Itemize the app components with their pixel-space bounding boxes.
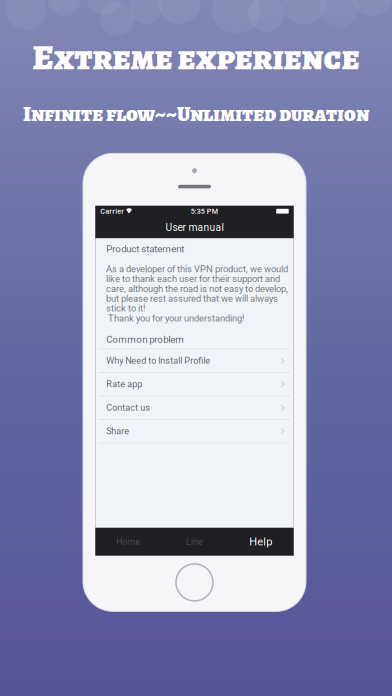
button[interactable]: Line <box>161 528 228 556</box>
staticText: Line <box>186 537 203 547</box>
button[interactable]: Home <box>95 528 161 556</box>
staticText: Rate app <box>106 379 142 389</box>
staticText: As a developer of this VPN product, we w… <box>106 264 288 324</box>
staticText: User manual <box>165 221 223 233</box>
staticText: Share <box>106 426 129 436</box>
button[interactable]: Rate app <box>95 373 294 396</box>
staticText: Why Need to Install Profile <box>106 355 210 366</box>
staticText: Common problem <box>106 334 184 345</box>
staticText: 5:35 PM <box>191 207 218 215</box>
button[interactable]: Contact us <box>95 396 294 419</box>
staticText: Product statement <box>106 243 184 255</box>
staticText: Home <box>116 537 140 547</box>
staticText: Infinite flow~~‌Unlimited duration <box>23 99 369 128</box>
button[interactable]: Why Need to Install Profile <box>95 349 294 372</box>
staticText: Help <box>249 535 272 548</box>
staticText: Contact us <box>106 402 150 413</box>
button[interactable]: Help <box>228 528 294 556</box>
staticText: Extreme experience <box>32 34 359 81</box>
button[interactable]: Share <box>95 420 294 443</box>
staticText: Carrier <box>100 207 124 215</box>
